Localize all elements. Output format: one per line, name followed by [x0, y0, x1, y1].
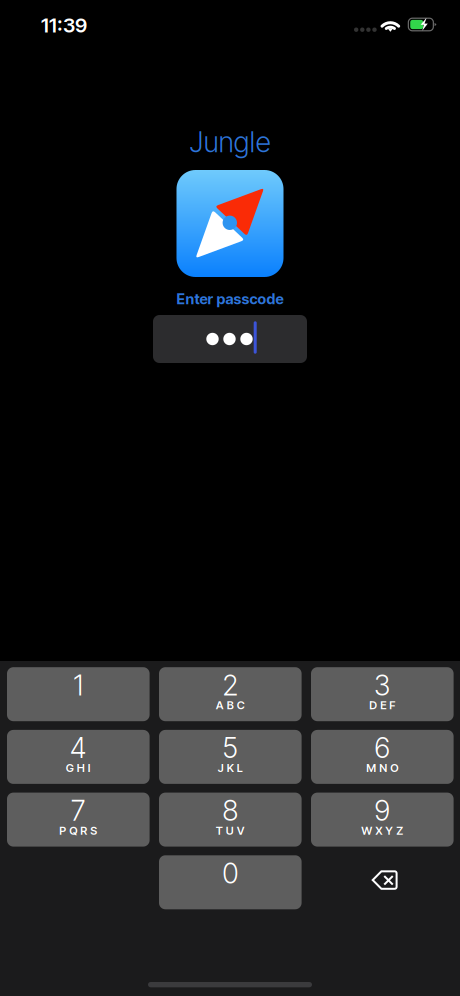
staticText: J K L: [218, 761, 243, 775]
button[interactable]: 2: [159, 667, 302, 721]
staticText: G H I: [66, 761, 91, 775]
button[interactable]: 5: [159, 730, 302, 784]
staticText: 6: [374, 731, 390, 765]
staticText: 4: [70, 731, 87, 765]
staticText: Jungle: [189, 125, 270, 159]
staticText: 1: [73, 668, 83, 702]
staticText: 9: [374, 794, 390, 828]
button[interactable]: 3: [311, 667, 454, 721]
staticText: 0: [222, 856, 238, 890]
button[interactable]: 4: [7, 730, 150, 784]
button[interactable]: 1: [7, 667, 150, 721]
staticText: 2: [222, 668, 238, 702]
staticText: 5: [222, 731, 238, 765]
staticText: 7: [71, 794, 86, 828]
button[interactable]: Passcode: [153, 315, 307, 363]
staticText: D E F: [369, 698, 395, 712]
button[interactable]: Delete: [311, 855, 454, 909]
staticText: 3: [374, 668, 391, 702]
staticText: 11:39: [41, 13, 87, 37]
staticText: P Q R S: [59, 824, 97, 837]
button[interactable]: 8: [159, 793, 302, 847]
staticText: M N O: [366, 761, 398, 775]
staticText: W X Y Z: [361, 824, 403, 837]
staticText: T U V: [216, 824, 245, 837]
button[interactable]: 0: [159, 855, 302, 909]
button[interactable]: 7: [7, 793, 150, 847]
button[interactable]: 9: [311, 793, 454, 847]
staticText: A B C: [216, 698, 245, 712]
button[interactable]: 6: [311, 730, 454, 784]
staticText: Enter passcode: [176, 290, 283, 308]
staticText: 8: [222, 794, 238, 828]
